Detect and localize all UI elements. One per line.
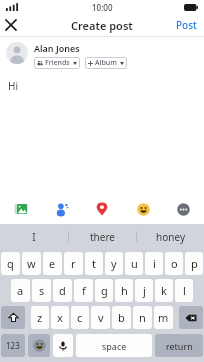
staticText: honey [156,230,185,244]
staticText: o [171,256,178,271]
staticText: a [17,283,24,298]
button[interactable]: Backspace [179,306,203,329]
staticText: h [121,283,128,298]
button[interactable]: v [91,306,110,329]
button[interactable]: p [185,252,203,275]
button[interactable]: w [22,252,41,275]
button[interactable]: Tag people [49,196,75,222]
staticText: b [118,310,125,325]
staticText: Friends [45,58,70,68]
staticText: j [143,283,146,298]
button[interactable]: Photo [8,196,34,222]
button[interactable]: j [135,279,153,302]
button[interactable]: h [115,279,133,302]
staticText: v [98,310,104,325]
staticText: r [71,256,76,271]
button[interactable]: m [154,306,173,329]
button[interactable]: a [11,279,30,302]
button[interactable]: k [155,279,173,302]
staticText: t [92,256,96,271]
staticText: e [49,256,56,271]
staticText: space [102,340,127,352]
button[interactable]: Album [85,57,127,69]
staticText: return [166,340,193,352]
button[interactable]: x [51,306,69,329]
button[interactable]: Friends [34,57,80,69]
button[interactable]: Check in [89,196,115,222]
staticText: I [32,230,36,244]
button[interactable]: Feeling [130,196,156,222]
button[interactable]: y [105,252,123,275]
button[interactable]: return [155,334,203,357]
staticText: f [82,283,86,298]
staticText: g [101,283,108,298]
staticText: Create post [71,18,133,33]
button[interactable]: c [71,306,89,329]
button[interactable]: Voice input [53,334,73,357]
button[interactable]: f [74,279,93,302]
staticText: m [158,310,169,325]
button[interactable]: More options [170,196,196,222]
button[interactable]: b [112,306,131,329]
button[interactable]: z [31,306,49,329]
button[interactable]: honey [137,224,204,249]
button[interactable]: u [125,252,143,275]
button[interactable]: Shift [1,306,25,329]
staticText: 123 [6,340,20,351]
button[interactable]: Emoji [28,334,50,357]
button[interactable]: Post [169,14,204,36]
staticText: x [57,310,63,325]
staticText: w [27,256,36,271]
staticText: i [153,256,156,271]
staticText: u [131,256,138,271]
staticText: Alan Jones [34,42,80,54]
button[interactable]: t [85,252,103,275]
button[interactable]: e [43,252,62,275]
staticText: there [90,230,115,244]
staticText: k [161,283,167,298]
staticText: Post [176,18,197,32]
button[interactable]: g [95,279,113,302]
staticText: n [139,310,146,325]
button[interactable]: i [145,252,163,275]
staticText: Album [95,58,117,68]
button[interactable]: s [32,279,51,302]
button[interactable]: n [133,306,152,329]
staticText: q [7,256,14,271]
staticText: l [183,283,186,298]
staticText: Hi [8,79,18,93]
button[interactable]: space [76,334,152,357]
staticText: z [37,310,43,325]
button[interactable]: q [1,252,20,275]
button[interactable]: Profile photo [6,42,28,64]
button[interactable]: I [0,224,68,249]
staticText: y [111,256,117,271]
staticText: p [191,256,198,271]
button[interactable]: o [165,252,183,275]
staticText: d [59,283,66,298]
staticText: 10:00 [92,2,113,13]
button[interactable]: 123 [1,334,25,357]
staticText: c [77,310,83,325]
button[interactable]: there [69,224,136,249]
staticText: s [39,283,45,298]
button[interactable]: d [53,279,72,302]
button[interactable]: r [64,252,83,275]
button[interactable]: l [175,279,193,302]
button[interactable]: Close [0,14,22,36]
